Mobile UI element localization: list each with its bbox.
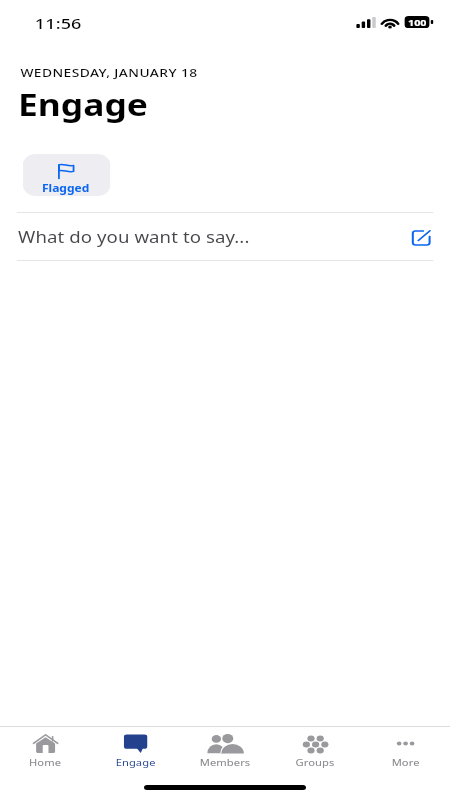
other: Compose message (413, 231, 430, 245)
button[interactable]: Flagged (23, 154, 110, 196)
button[interactable]: More (360, 731, 450, 769)
staticText: Engage (18, 84, 149, 124)
button[interactable]: Home (0, 731, 90, 769)
button[interactable]: What do you want to say... (0, 213, 450, 260)
staticText: Home (29, 756, 61, 769)
button[interactable]: Groups (270, 731, 360, 769)
staticText: More (391, 756, 420, 769)
staticText: Members (199, 756, 251, 769)
staticText: 11:56 (35, 13, 82, 33)
staticText: 100 (408, 16, 427, 28)
button[interactable]: Engage (90, 731, 180, 769)
button[interactable]: Members (180, 731, 270, 769)
staticText: Groups (295, 756, 335, 769)
staticText: Flagged (42, 181, 90, 195)
staticText: What do you want to say... (18, 226, 250, 247)
staticText: WEDNESDAY, JANUARY 18 (20, 65, 198, 81)
staticText: Engage (115, 756, 156, 769)
